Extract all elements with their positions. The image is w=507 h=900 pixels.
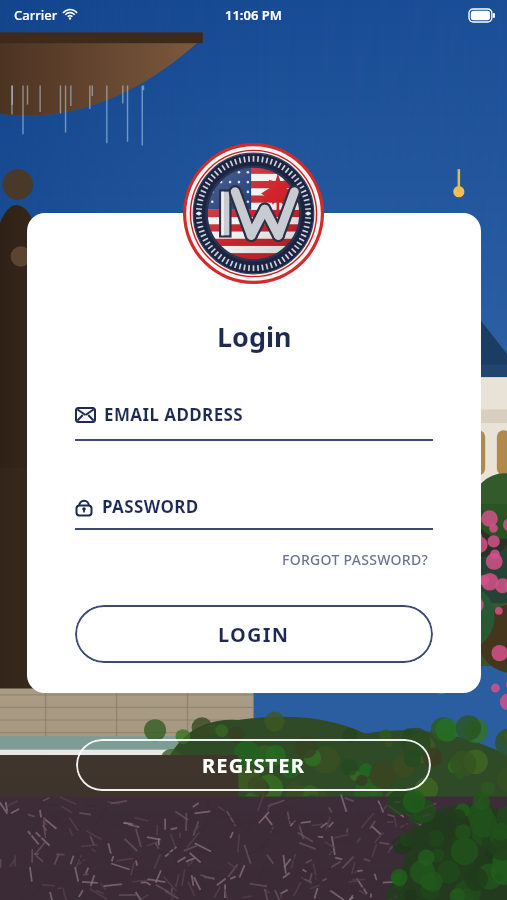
staticText: EMAIL ADDRESS <box>104 403 244 426</box>
staticText: 11:06 PM <box>225 6 282 24</box>
button[interactable]: PASSWORD <box>75 495 433 518</box>
button[interactable]: EMAIL ADDRESS <box>75 403 433 426</box>
other: Iron Workers logo <box>183 143 324 284</box>
button[interactable]: FORGOT PASSWORD? <box>278 546 433 573</box>
button[interactable]: LOGIN <box>75 605 433 663</box>
staticText: Login <box>217 318 292 355</box>
staticText: Carrier <box>14 6 58 24</box>
staticText: PASSWORD <box>102 495 199 518</box>
staticText: REGISTER <box>202 752 306 779</box>
staticText: LOGIN <box>218 621 290 648</box>
button[interactable]: REGISTER <box>76 739 431 791</box>
